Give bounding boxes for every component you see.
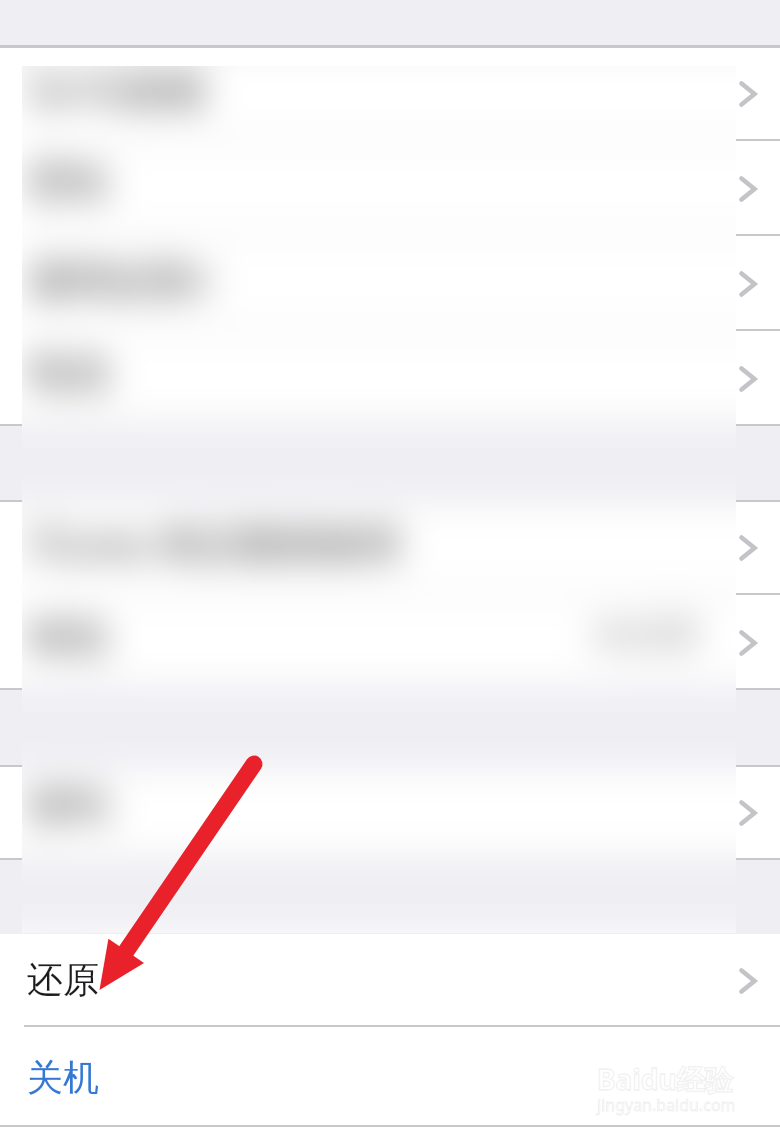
staticText: 钱包 — [28, 611, 108, 661]
button[interactable] — [0, 46, 780, 141]
staticText: Siri与搜索 — [28, 62, 208, 117]
button[interactable]: 通用设置ii — [0, 236, 780, 331]
button[interactable] — [0, 500, 780, 595]
button[interactable]: Siri与搜索 — [0, 46, 780, 141]
button[interactable]: 电池 — [0, 331, 780, 426]
button[interactable]: 还原 — [0, 934, 780, 1027]
button[interactable]: 钱包 — [0, 595, 780, 690]
staticText: 还原 — [27, 957, 99, 1002]
button[interactable]: 关机 — [0, 1027, 780, 1131]
button[interactable] — [0, 236, 780, 331]
button[interactable]: 关机 — [0, 1027, 780, 1131]
button[interactable]: 壁纸 — [0, 141, 780, 236]
staticText: iTunes 商店繁體應用 — [28, 516, 401, 571]
button[interactable]: 密码 — [0, 765, 780, 860]
staticText: Baidu经验 — [597, 1060, 733, 1098]
staticText: 关机 — [27, 1055, 99, 1100]
staticText: jingyan.baidu.com — [597, 1094, 736, 1116]
staticText: 关机 — [27, 1055, 99, 1100]
staticText: 还原 — [27, 957, 99, 1002]
button[interactable]: 还原 — [0, 934, 780, 1027]
staticText: 壁纸 — [28, 157, 108, 207]
staticText: 密码 — [28, 781, 108, 831]
button[interactable] — [0, 765, 780, 860]
button[interactable] — [0, 595, 780, 690]
button[interactable]: iTunes 商店繁體應用 — [0, 500, 780, 595]
staticText: 未设置 — [592, 612, 700, 657]
button[interactable] — [0, 141, 780, 236]
other: Pointer arrow — [0, 0, 780, 1131]
staticText: 通用设置ii — [28, 252, 209, 307]
staticText: 电池 — [28, 347, 108, 397]
button[interactable] — [0, 331, 780, 426]
